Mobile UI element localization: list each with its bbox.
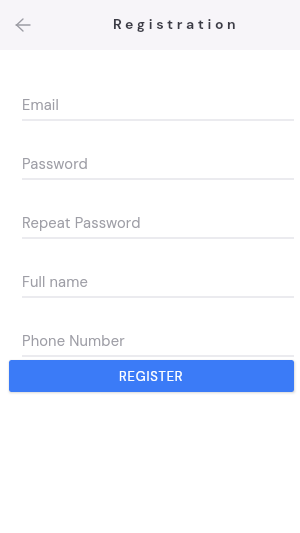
button[interactable]: Repeat Password	[22, 213, 294, 239]
button[interactable]: REGISTER	[9, 360, 294, 392]
staticText: Password	[22, 154, 88, 173]
button[interactable]: Full name	[22, 272, 294, 298]
staticText: Full name	[22, 272, 88, 291]
button[interactable]: Phone Number	[22, 331, 294, 357]
button[interactable]: Password	[22, 154, 294, 180]
staticText: Email	[22, 95, 59, 114]
button[interactable]: Email	[22, 95, 294, 121]
staticText: REGISTER	[119, 368, 184, 385]
staticText: Registration	[113, 15, 240, 33]
staticText: Phone Number	[22, 331, 125, 350]
staticText: Repeat Password	[22, 213, 141, 232]
button[interactable]: Navigate back	[4, 6, 42, 44]
